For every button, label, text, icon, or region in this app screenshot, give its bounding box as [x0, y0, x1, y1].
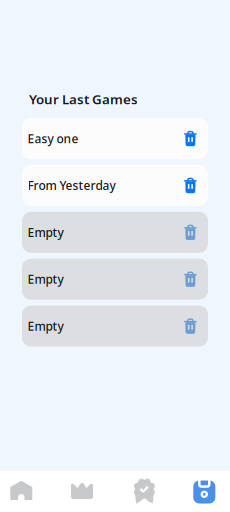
staticText: From Yesterday	[27, 177, 115, 193]
button[interactable]: Empty	[22, 306, 208, 347]
button[interactable]: Leaderboard	[62, 470, 102, 511]
button[interactable]: Empty	[22, 259, 208, 300]
button[interactable]: Home	[1, 469, 41, 510]
staticText: Your Last Games	[29, 90, 138, 108]
button[interactable]: Empty	[22, 212, 208, 253]
button[interactable]: From Yesterday	[22, 165, 208, 206]
staticText: Empty	[27, 224, 63, 240]
staticText: Easy one	[27, 130, 78, 146]
button[interactable]: Achievements	[124, 472, 164, 512]
staticText: Empty	[27, 271, 63, 287]
button[interactable]: Saved games	[184, 471, 224, 512]
button[interactable]: Easy one	[22, 118, 208, 159]
staticText: Empty	[27, 318, 63, 334]
